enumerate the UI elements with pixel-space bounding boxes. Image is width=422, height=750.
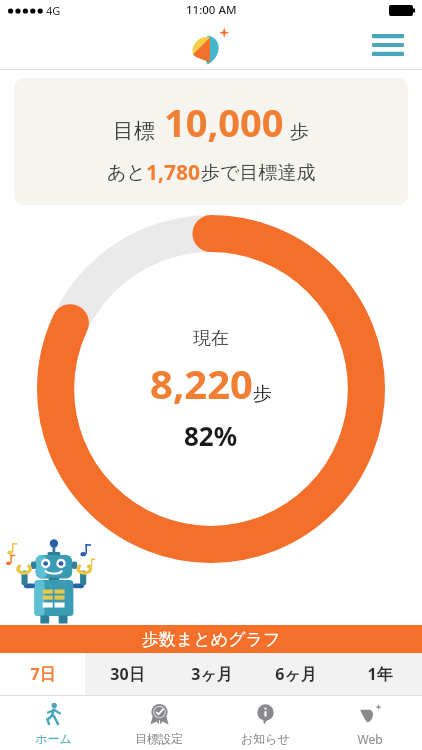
staticText: 歩 <box>290 120 309 144</box>
button[interactable]: 7日 <box>0 653 85 695</box>
button[interactable]: Web <box>318 696 422 750</box>
staticText: 目標設定 <box>135 731 183 746</box>
staticText: 7日 <box>30 663 56 685</box>
staticText: 歩で目標達成 <box>201 161 316 185</box>
button[interactable]: 30日 <box>85 653 170 695</box>
staticText: 目標 <box>113 118 155 144</box>
staticText: 8,220 <box>150 356 253 410</box>
button[interactable]: 目標設定 <box>106 696 212 750</box>
staticText: あと <box>107 161 146 185</box>
staticText: お知らせ <box>241 731 290 746</box>
staticText: 82% <box>184 418 238 453</box>
staticText: 3ヶ月 <box>191 663 233 685</box>
button[interactable]: 1年 <box>338 653 422 695</box>
staticText: 6ヶ月 <box>275 663 317 685</box>
button[interactable]: 3ヶ月 <box>170 653 254 695</box>
staticText: ホーム <box>35 731 72 746</box>
staticText: 11:00 AM <box>186 2 237 18</box>
staticText: 30日 <box>110 663 145 685</box>
staticText: 4G <box>46 3 61 18</box>
staticText: 歩数まとめグラフ <box>142 629 281 650</box>
button[interactable]: ホーム <box>0 696 106 750</box>
staticText: 歩 <box>253 382 272 406</box>
button[interactable]: お知らせ <box>212 696 318 750</box>
staticText: 1,780 <box>146 158 201 187</box>
staticText: 現在 <box>193 327 229 350</box>
button[interactable]: 目標 <box>14 78 408 205</box>
button[interactable]: 6ヶ月 <box>254 653 338 695</box>
staticText: 10,000 <box>164 96 284 148</box>
staticText: 1年 <box>367 663 393 685</box>
button[interactable]: Menu <box>364 21 412 69</box>
staticText: Web <box>357 731 383 747</box>
